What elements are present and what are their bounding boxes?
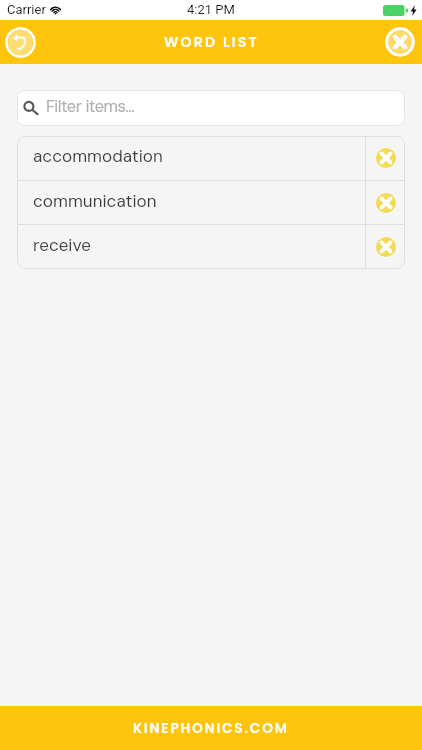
button[interactable]: Back xyxy=(5,27,36,58)
staticText: WORD LIST xyxy=(164,32,259,52)
button[interactable]: accommodation xyxy=(17,136,365,180)
button[interactable]: Filter items... xyxy=(17,90,405,126)
staticText: communication xyxy=(33,190,157,212)
button[interactable]: Close xyxy=(385,27,415,57)
staticText: Carrier xyxy=(7,2,46,17)
staticText: 4:21 PM xyxy=(187,2,235,17)
button[interactable]: Remove accommodation xyxy=(366,136,405,180)
staticText: accommodation xyxy=(33,145,163,167)
button[interactable]: KINEPHONICS.COM xyxy=(0,706,422,750)
staticText: KINEPHONICS.COM xyxy=(133,719,289,738)
staticText: Filter items... xyxy=(46,96,135,117)
button[interactable]: receive xyxy=(17,225,365,269)
button[interactable]: communication xyxy=(17,181,365,224)
button[interactable]: Remove communication xyxy=(366,181,405,224)
staticText: receive xyxy=(33,234,91,256)
button[interactable]: Remove receive xyxy=(366,225,405,269)
